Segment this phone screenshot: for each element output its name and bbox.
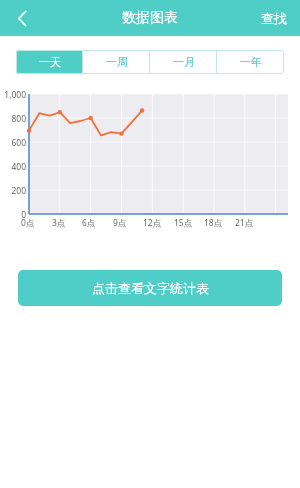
staticText: 3点	[52, 217, 66, 229]
button[interactable]: 一周	[83, 50, 150, 74]
staticText: 0	[0, 209, 26, 221]
staticText: 600	[0, 137, 26, 149]
staticText: 18点	[204, 217, 223, 229]
staticText: 0点	[21, 217, 35, 229]
staticText: 9点	[113, 217, 127, 229]
staticText: 一年	[240, 55, 262, 69]
staticText: 21点	[235, 217, 254, 229]
staticText: 800	[0, 113, 26, 125]
staticText: 400	[0, 161, 26, 173]
button[interactable]: 一天	[16, 50, 83, 74]
staticText: 12点	[143, 217, 162, 229]
staticText: 查找	[261, 10, 287, 26]
staticText: 6点	[82, 217, 96, 229]
button[interactable]: Back	[0, 0, 44, 36]
button[interactable]: 点击查看文字统计表	[18, 270, 282, 306]
staticText: 200	[0, 185, 26, 197]
staticText: 一月	[173, 55, 195, 69]
staticText: 数据图表	[122, 9, 178, 27]
button[interactable]: 一月	[150, 50, 217, 74]
button[interactable]: 查找	[248, 0, 300, 36]
staticText: 1,000	[0, 89, 26, 101]
staticText: 一周	[106, 55, 128, 69]
staticText: 一天	[39, 55, 61, 69]
staticText: 15点	[174, 217, 193, 229]
button[interactable]: 一年	[217, 50, 284, 74]
staticText: 点击查看文字统计表	[92, 280, 209, 296]
